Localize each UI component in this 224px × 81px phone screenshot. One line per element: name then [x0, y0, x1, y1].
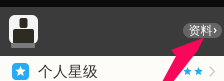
staticText: 资料 — [188, 23, 212, 38]
button[interactable]: 资料 — [183, 23, 222, 38]
button[interactable]: 个人星级 — [0, 60, 224, 81]
staticText: 个人星级 — [38, 62, 98, 80]
